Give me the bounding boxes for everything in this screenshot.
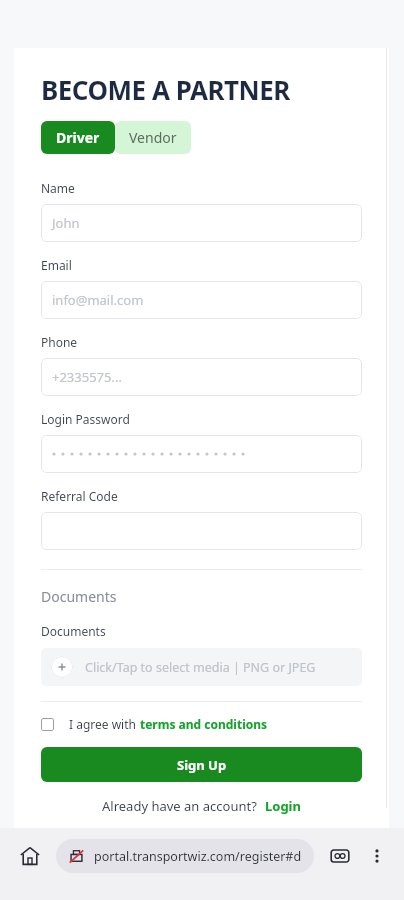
staticText: Documents [41, 587, 117, 606]
staticText: Already have an account? [102, 797, 257, 815]
button[interactable]: John [41, 204, 362, 242]
staticText: Phone [41, 334, 78, 350]
staticText: John [52, 214, 80, 232]
button[interactable]: Home [10, 836, 50, 876]
button[interactable]: Driver [41, 121, 115, 154]
button[interactable] [41, 512, 362, 550]
staticText: Login [265, 797, 301, 815]
staticText: info@mail.com [52, 291, 144, 309]
button[interactable]: Login [265, 797, 301, 815]
staticText: Email [41, 257, 72, 273]
staticText: Name [41, 180, 75, 196]
button[interactable]: portal.transportwiz.com/register#d [56, 839, 314, 873]
staticText: Documents [41, 623, 106, 639]
button[interactable] [41, 435, 362, 473]
staticText: I agree with [69, 716, 140, 732]
button[interactable]: I agree with [41, 716, 268, 732]
button[interactable]: Click/Tap to select media | PNG or JPEG [41, 648, 362, 686]
staticText: Login Password [41, 411, 130, 427]
button[interactable]: Tabs [322, 838, 358, 874]
staticText: Vendor [129, 128, 177, 147]
button[interactable]: Sign Up [41, 747, 362, 782]
staticText: Click/Tap to select media | PNG or JPEG [85, 659, 316, 676]
staticText: portal.transportwiz.com/register#d [94, 848, 302, 865]
staticText: Driver [56, 128, 100, 147]
button[interactable]: More options [360, 839, 394, 873]
button[interactable]: info@mail.com [41, 281, 362, 319]
button[interactable]: Vendor [115, 121, 191, 154]
staticText: Referral Code [41, 488, 118, 504]
staticText: +2335575... [52, 368, 122, 386]
staticText: BECOME A PARTNER [41, 72, 290, 107]
staticText: Sign Up [177, 756, 227, 774]
button[interactable]: +2335575... [41, 358, 362, 396]
staticText: terms and conditions [140, 716, 268, 732]
